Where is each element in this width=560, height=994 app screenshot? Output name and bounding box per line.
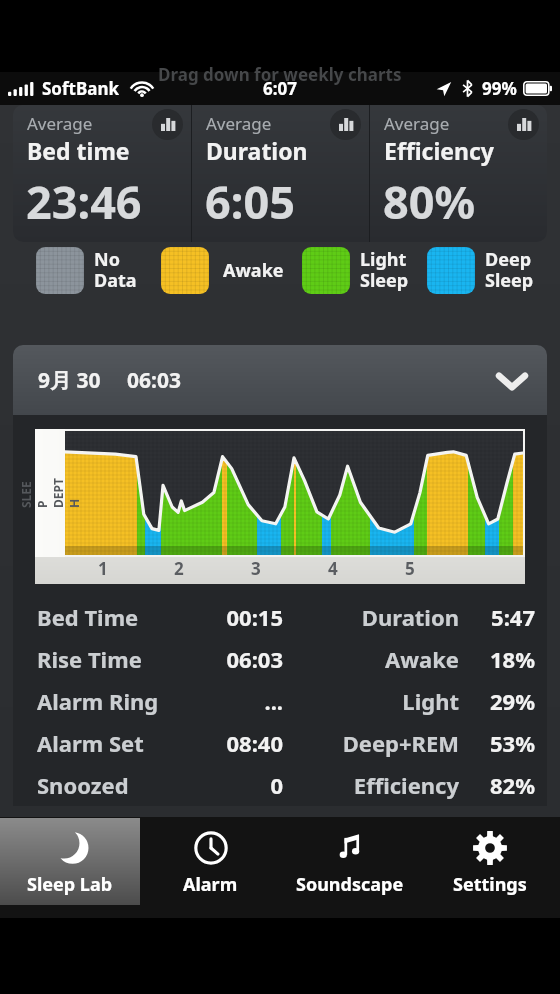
button[interactable]: Snoozed [13, 764, 547, 806]
staticText: 06:03 [127, 366, 181, 395]
button[interactable]: Settings [420, 818, 560, 905]
staticText: Average [384, 112, 450, 135]
staticText: Efficiency [299, 770, 459, 800]
staticText: Awake [223, 258, 284, 283]
staticText: 6:07 [263, 77, 297, 100]
staticText: Light [299, 686, 459, 716]
staticText: Average [206, 112, 272, 135]
staticText: SoftBank [42, 77, 120, 100]
staticText: 5:47 [473, 602, 535, 632]
button[interactable]: Average [370, 105, 547, 242]
staticText: 1 [98, 557, 108, 580]
button[interactable] [36, 247, 84, 294]
button[interactable] [161, 247, 209, 294]
staticText: Bed time [27, 135, 130, 166]
staticText: 0 [185, 770, 283, 800]
staticText: 99% [482, 77, 517, 100]
button[interactable]: Alarm Ring [13, 680, 547, 722]
staticText: Alarm Ring [37, 686, 185, 716]
button[interactable]: Weekly chart for Duration [330, 109, 361, 140]
button[interactable]: Average [13, 105, 191, 242]
staticText: SLEEP DEPTH [18, 478, 82, 508]
staticText: Bed Time [37, 602, 185, 632]
button[interactable]: Sleep Lab [0, 818, 140, 905]
staticText: 29% [473, 686, 535, 716]
staticText: 53% [473, 728, 535, 758]
staticText: 9月 30 [38, 366, 101, 395]
staticText: Duration [206, 135, 308, 166]
button[interactable] [427, 247, 475, 294]
staticText: Alarm Set [37, 728, 185, 758]
staticText: Efficiency [384, 135, 494, 166]
staticText: Snoozed [37, 770, 185, 800]
staticText: 6:05 [205, 171, 295, 232]
staticText: Deep Sleep [485, 247, 534, 293]
staticText: Settings [453, 872, 527, 897]
staticText: ... [185, 686, 283, 716]
staticText: Average [27, 112, 93, 135]
button[interactable]: Alarm [140, 818, 280, 905]
staticText: Rise Time [37, 644, 185, 674]
staticText: 4 [328, 557, 338, 580]
staticText: Awake [299, 644, 459, 674]
staticText: Alarm [183, 872, 238, 897]
staticText: 08:40 [185, 728, 283, 758]
staticText: 00:15 [185, 602, 283, 632]
button[interactable]: Rise Time [13, 638, 547, 680]
staticText: Drag down for weekly charts [158, 63, 402, 86]
button[interactable]: Weekly chart for Efficiency [508, 109, 539, 140]
button[interactable] [302, 247, 350, 294]
staticText: 2 [174, 557, 184, 580]
other: Collapse [499, 373, 525, 388]
button[interactable]: 9月 30 [13, 345, 547, 415]
staticText: Light Sleep [360, 247, 409, 293]
staticText: Soundscape [296, 872, 404, 897]
staticText: 82% [473, 770, 535, 800]
button[interactable]: Average [192, 105, 369, 242]
staticText: No Data [94, 247, 137, 293]
staticText: 23:46 [26, 171, 142, 232]
staticText: 80% [383, 171, 476, 232]
staticText: Deep+REM [299, 728, 459, 758]
staticText: 5 [405, 557, 415, 580]
staticText: Sleep Lab [27, 872, 113, 897]
staticText: 06:03 [185, 644, 283, 674]
button[interactable]: Bed Time [13, 596, 547, 638]
staticText: Duration [299, 602, 459, 632]
button[interactable]: Soundscape [280, 818, 420, 905]
staticText: 3 [251, 557, 261, 580]
button[interactable]: Weekly chart for Bed time [152, 109, 183, 140]
staticText: 18% [473, 644, 535, 674]
button[interactable]: Alarm Set [13, 722, 547, 764]
